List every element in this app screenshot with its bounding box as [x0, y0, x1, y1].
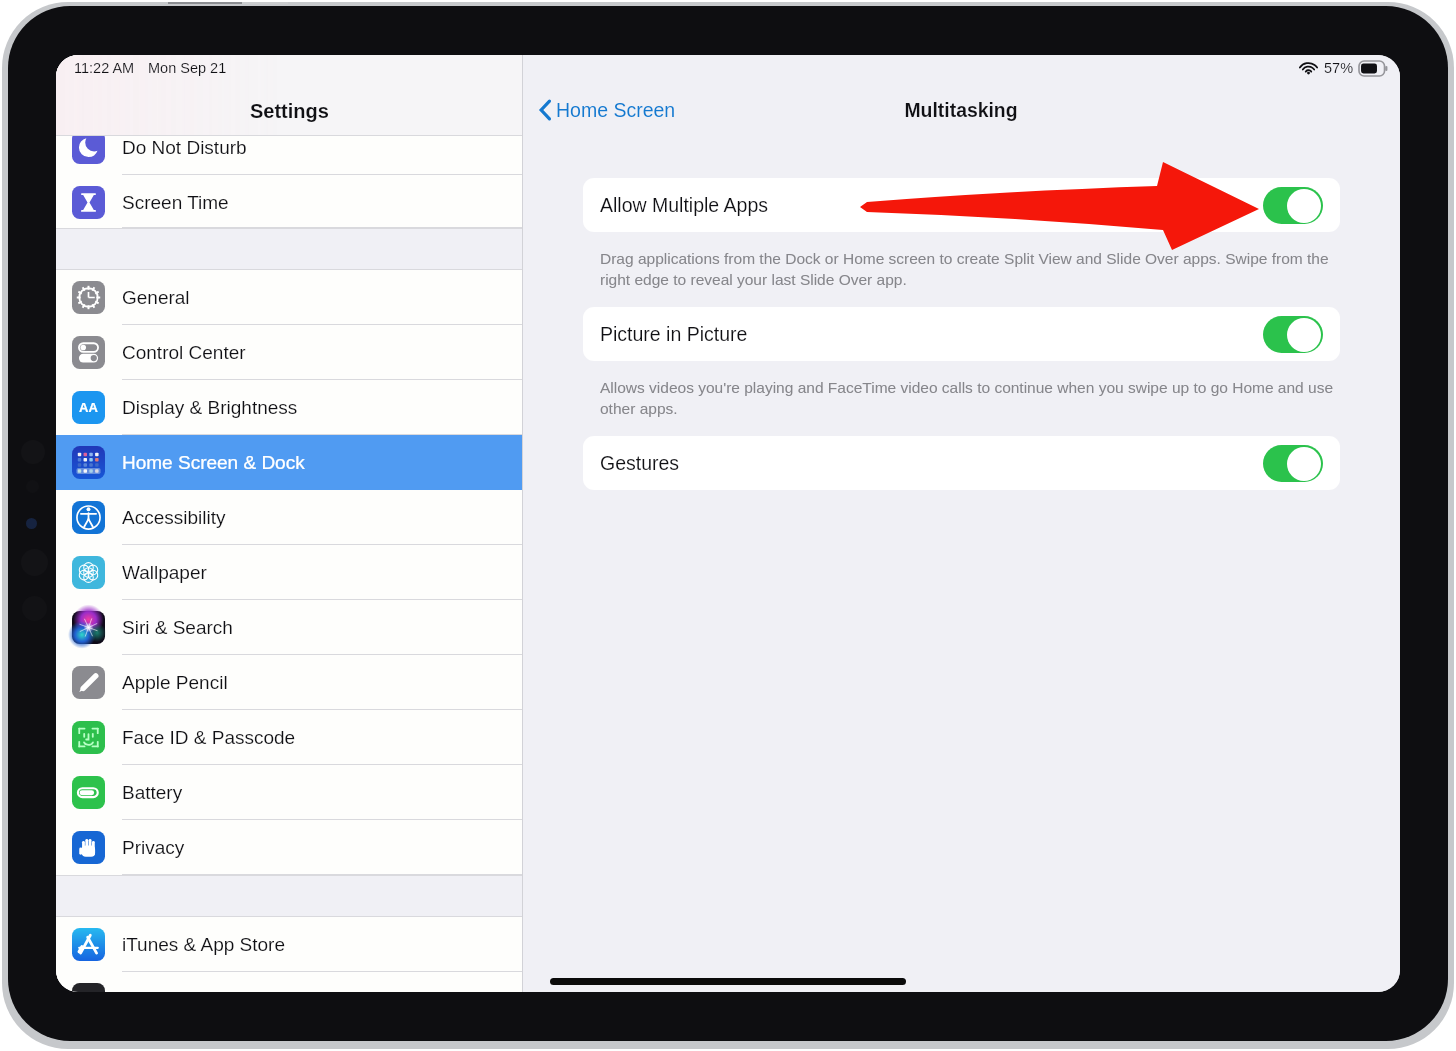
staticText: Siri & Search: [122, 617, 233, 638]
staticText: Drag applications from the Dock or Home …: [600, 250, 1345, 288]
button[interactable]: Siri & Search: [56, 600, 522, 655]
staticText: Face ID & Passcode: [122, 727, 296, 748]
staticText: Accessibility: [122, 507, 226, 528]
button[interactable]: Toggle: [1263, 316, 1323, 353]
staticText: General: [122, 287, 190, 308]
staticText: iTunes & App Store: [122, 934, 286, 955]
button[interactable]: Picture in Picture: [583, 307, 1340, 361]
staticText: AA: [79, 400, 98, 415]
staticText: Home Screen & Dock: [122, 452, 305, 473]
button[interactable]: Back: [537, 97, 676, 123]
button[interactable]: Face ID & Passcode: [56, 710, 522, 765]
staticText: Control Center: [122, 342, 246, 363]
staticText: Wallpaper: [122, 562, 207, 583]
button[interactable]: Toggle: [1263, 187, 1323, 224]
staticText: Privacy: [122, 837, 185, 858]
button[interactable]: Battery: [56, 765, 522, 820]
button[interactable]: Control Center: [56, 325, 522, 380]
staticText: Gestures: [600, 452, 680, 474]
staticText: Multitasking: [904, 99, 1018, 121]
button[interactable]: Gestures: [583, 436, 1340, 490]
staticText: 11:22 AM: [74, 60, 135, 76]
button[interactable]: Accessibility: [56, 490, 522, 545]
staticText: Display & Brightness: [122, 397, 298, 418]
button[interactable]: Wallet & Apple Pay: [56, 972, 522, 992]
staticText: Home Screen: [556, 99, 676, 121]
other: Battery: [1359, 61, 1388, 76]
button[interactable]: Screen Time: [56, 175, 522, 228]
staticText: Allow Multiple Apps: [600, 194, 768, 216]
staticText: Apple Pencil: [122, 672, 228, 693]
staticText: Mon Sep 21: [148, 60, 227, 76]
button[interactable]: Wallpaper: [56, 545, 522, 600]
other: Back: [537, 97, 553, 123]
button[interactable]: General: [56, 270, 522, 325]
button[interactable]: Home Screen & Dock: [56, 435, 522, 490]
button[interactable]: iTunes & App Store: [56, 917, 522, 972]
staticText: 57%: [1324, 60, 1354, 76]
staticText: Do Not Disturb: [122, 137, 247, 158]
button[interactable]: AA: [56, 380, 522, 435]
button[interactable]: Toggle: [1263, 445, 1323, 482]
button[interactable]: Do Not Disturb: [56, 136, 522, 175]
button[interactable]: Allow Multiple Apps: [583, 178, 1340, 232]
staticText: Picture in Picture: [600, 323, 748, 345]
staticText: Screen Time: [122, 192, 229, 213]
staticText: Settings: [250, 100, 329, 122]
other: Wi-Fi: [1300, 61, 1317, 75]
staticText: Allows videos you're playing and FaceTim…: [600, 379, 1345, 417]
button[interactable]: Apple Pencil: [56, 655, 522, 710]
button[interactable]: Privacy: [56, 820, 522, 875]
staticText: Battery: [122, 782, 183, 803]
